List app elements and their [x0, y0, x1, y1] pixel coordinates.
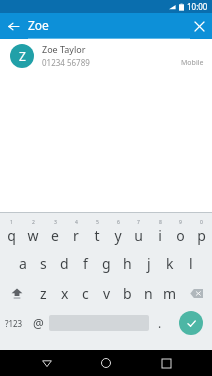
staticText: w: [27, 226, 39, 245]
staticText: 4: [75, 219, 78, 226]
staticText: 8: [159, 219, 162, 226]
staticText: 7: [137, 219, 140, 226]
staticText: y: [114, 226, 122, 245]
staticText: 6: [117, 219, 120, 226]
staticText: 10:00: [187, 1, 208, 12]
button[interactable]: Zoe: [26, 13, 186, 39]
staticText: s: [40, 254, 47, 273]
button[interactable]: Back: [34, 350, 60, 376]
staticText: d: [60, 254, 69, 273]
staticText: ?123: [5, 318, 23, 329]
staticText: 01234 56789: [42, 57, 90, 68]
button[interactable]: .: [149, 308, 170, 338]
staticText: f: [83, 254, 88, 273]
button[interactable]: 7: [128, 216, 149, 248]
button[interactable]: c: [75, 278, 96, 308]
button[interactable]: n: [138, 278, 159, 308]
button[interactable]: Backspace: [180, 278, 212, 308]
staticText: a: [19, 254, 27, 273]
staticText: e: [51, 226, 59, 245]
staticText: o: [176, 226, 185, 245]
staticText: x: [61, 284, 69, 303]
button[interactable]: Send: [170, 308, 212, 338]
staticText: Z: [19, 48, 26, 64]
staticText: m: [163, 284, 177, 303]
staticText: t: [94, 226, 100, 245]
staticText: j: [147, 254, 151, 273]
staticText: i: [158, 226, 162, 245]
staticText: v: [103, 284, 111, 303]
button[interactable]: ?123: [0, 308, 28, 338]
staticText: 1: [10, 219, 13, 226]
staticText: Zoe Taylor: [42, 43, 86, 55]
staticText: b: [123, 284, 132, 303]
button[interactable]: 1: [0, 216, 22, 248]
staticText: l: [189, 254, 193, 273]
staticText: q: [7, 226, 16, 245]
button[interactable]: m: [159, 278, 180, 308]
staticText: r: [73, 226, 79, 245]
button[interactable]: Shift: [0, 278, 33, 308]
button[interactable]: g: [96, 248, 117, 278]
button[interactable]: 0: [191, 216, 212, 248]
staticText: 9: [179, 219, 182, 226]
button[interactable]: @: [28, 308, 49, 338]
button[interactable]: 9: [170, 216, 191, 248]
staticText: 2: [32, 219, 35, 226]
staticText: @: [33, 315, 44, 331]
button[interactable]: 2: [22, 216, 44, 248]
button[interactable]: h: [117, 248, 138, 278]
button[interactable]: Home: [93, 350, 119, 376]
staticText: n: [144, 284, 153, 303]
button[interactable]: b: [117, 278, 138, 308]
staticText: Mobile: [181, 58, 204, 68]
staticText: g: [102, 254, 111, 273]
staticText: h: [123, 254, 132, 273]
button[interactable]: Clear: [186, 13, 212, 39]
button[interactable]: d: [54, 248, 75, 278]
button[interactable]: a: [12, 248, 33, 278]
button[interactable]: x: [54, 278, 75, 308]
button[interactable]: 5: [86, 216, 107, 248]
button[interactable]: Recents: [153, 350, 179, 376]
button[interactable]: l: [180, 248, 201, 278]
button[interactable]: 8: [149, 216, 170, 248]
staticText: u: [134, 226, 143, 245]
button[interactable]: 6: [107, 216, 128, 248]
staticText: p: [197, 226, 206, 245]
button[interactable]: f: [75, 248, 96, 278]
button[interactable]: v: [96, 278, 117, 308]
button[interactable]: z: [33, 278, 54, 308]
button[interactable]: s: [33, 248, 54, 278]
button[interactable]: k: [159, 248, 180, 278]
staticText: c: [82, 284, 89, 303]
button[interactable]: Z: [0, 39, 212, 72]
button[interactable]: 3: [44, 216, 65, 248]
staticText: k: [166, 254, 174, 273]
staticText: z: [40, 284, 47, 303]
staticText: 5: [96, 219, 99, 226]
staticText: 0: [200, 219, 203, 226]
button[interactable]: Back: [0, 13, 26, 39]
staticText: .: [158, 315, 162, 331]
button[interactable]: 4: [65, 216, 86, 248]
staticText: 3: [54, 219, 57, 226]
button[interactable]: j: [138, 248, 159, 278]
staticText: Zoe: [28, 17, 49, 33]
